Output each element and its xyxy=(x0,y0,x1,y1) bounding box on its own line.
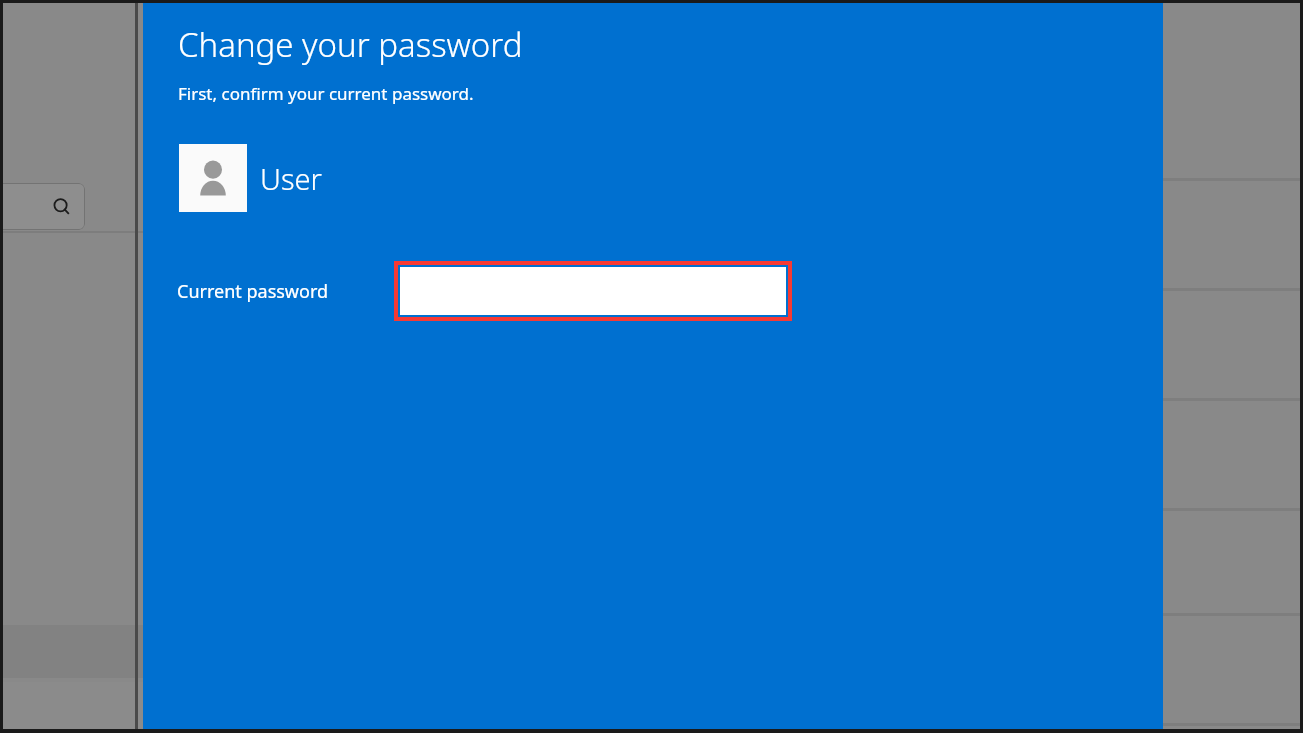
button[interactable]: Search xyxy=(0,183,85,230)
button[interactable]: User xyxy=(179,144,322,212)
staticText: First, confirm your current password. xyxy=(178,82,474,105)
staticText: Current password xyxy=(177,279,329,304)
staticText: User xyxy=(260,159,322,198)
staticText: Change your password xyxy=(178,22,523,67)
